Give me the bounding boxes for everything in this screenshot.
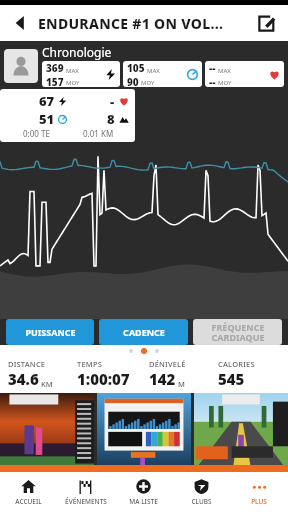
staticText: CALORIES xyxy=(218,359,255,369)
button[interactable]: Back xyxy=(8,10,34,36)
staticText: Chronologie xyxy=(42,44,112,60)
staticText: PUISSANCE xyxy=(25,326,76,338)
button[interactable]: 369 xyxy=(42,61,120,87)
staticText: CLUBS xyxy=(191,497,212,506)
staticText: 142 xyxy=(149,369,176,389)
staticText: M xyxy=(178,379,185,389)
staticText: 67 xyxy=(39,92,55,110)
staticText: 0:00 TE xyxy=(23,128,50,139)
staticText: CADENCE xyxy=(123,326,165,338)
staticText: 34.6 xyxy=(8,369,39,389)
staticText: - xyxy=(110,92,115,110)
staticText: DISTANCE xyxy=(8,359,46,369)
button[interactable]: PUISSANCE xyxy=(6,319,94,345)
staticText: 369 xyxy=(46,61,64,75)
staticText: MOY xyxy=(66,79,80,87)
button[interactable]: FRÉQUENCE CARDIAQUE xyxy=(193,319,282,345)
staticText: 0.01 KM xyxy=(83,128,114,139)
staticText: DÉNIVELÉ xyxy=(149,359,186,369)
button[interactable]: ÉVÉNEMENTS xyxy=(57,472,114,512)
button[interactable]: CADENCE xyxy=(99,319,188,345)
staticText: 1:00:07 xyxy=(77,369,130,389)
button[interactable]: CLUBS xyxy=(172,472,230,512)
staticText: 105 xyxy=(127,61,145,75)
staticText: ÉVÉNEMENTS xyxy=(65,497,107,506)
staticText: ACCUEIL xyxy=(15,497,42,506)
staticText: 545 xyxy=(218,369,245,389)
staticText: TEMPS xyxy=(77,359,102,369)
button[interactable]: Edit xyxy=(252,9,280,37)
button[interactable]: 67 xyxy=(0,89,135,142)
staticText: FRÉQUENCE CARDIAQUE xyxy=(211,321,265,343)
button[interactable]: Screenshot 3 xyxy=(194,393,288,465)
staticText: -- xyxy=(209,75,216,87)
button[interactable]: Profile xyxy=(4,49,38,83)
staticText: ENDURANCE #1 ON VOL... xyxy=(38,14,224,33)
staticText: PLUS xyxy=(251,497,267,506)
button[interactable]: -- xyxy=(205,61,284,87)
staticText: MAX xyxy=(147,67,160,75)
button[interactable]: MA LISTE xyxy=(114,472,172,512)
staticText: MOY xyxy=(218,79,232,87)
staticText: 90 xyxy=(127,75,139,87)
staticText: MAX xyxy=(66,67,79,75)
button[interactable]: Screenshot 1 xyxy=(0,393,94,465)
staticText: MA LISTE xyxy=(129,497,158,506)
staticText: MAX xyxy=(218,67,231,75)
staticText: 51 xyxy=(39,110,55,128)
button[interactable]: 105 xyxy=(123,61,202,87)
staticText: MOY xyxy=(141,79,155,87)
staticText: 157 xyxy=(46,75,64,87)
staticText: KM xyxy=(41,379,53,389)
staticText: -- xyxy=(209,61,216,75)
staticText: 8 xyxy=(107,110,115,128)
button[interactable]: ACCUEIL xyxy=(0,472,57,512)
button[interactable]: Screenshot 2 xyxy=(97,393,191,465)
button[interactable]: PLUS xyxy=(230,472,288,512)
